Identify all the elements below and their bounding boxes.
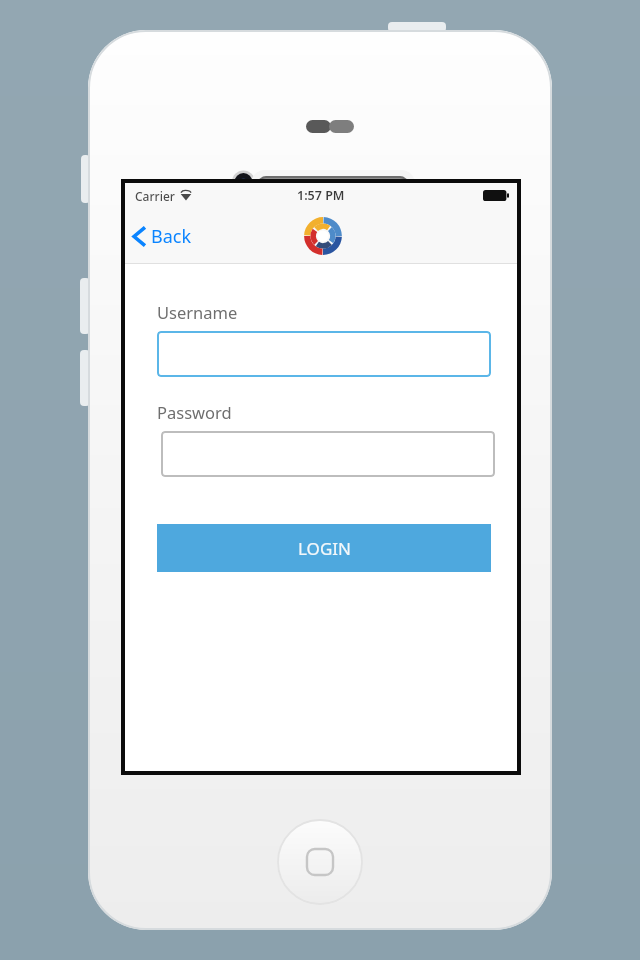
staticText: LOGIN (298, 537, 351, 560)
staticText: Username (157, 301, 238, 323)
staticText: Carrier (135, 188, 175, 204)
staticText: Back (151, 224, 192, 249)
staticText: Password (157, 401, 232, 423)
staticText: 1:57 PM (297, 187, 345, 204)
button[interactable]: Home (278, 820, 362, 904)
button[interactable]: LOGIN (157, 524, 491, 572)
button[interactable] (161, 431, 495, 477)
button[interactable]: Back (133, 224, 192, 249)
button[interactable] (157, 331, 491, 377)
